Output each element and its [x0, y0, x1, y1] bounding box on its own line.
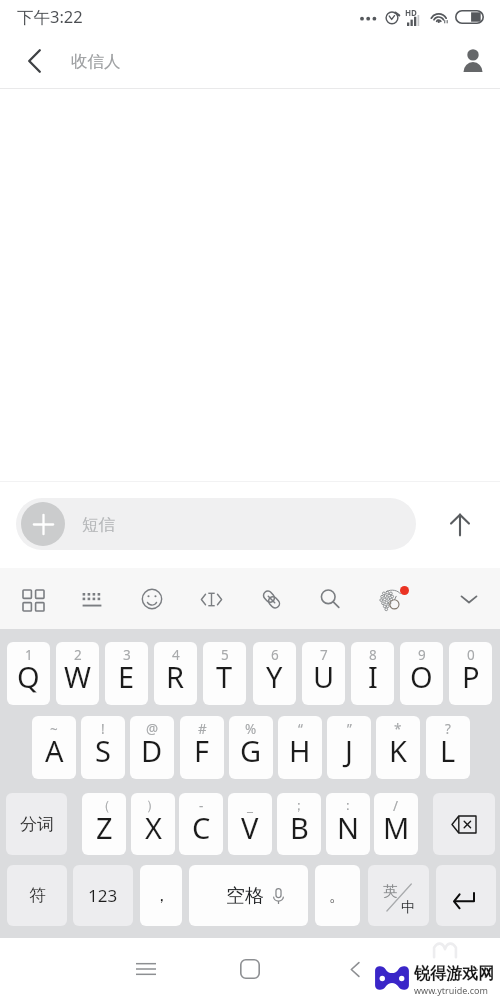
button[interactable]: 。 [315, 865, 360, 926]
staticText: HD [405, 7, 417, 18]
staticText: 短信 [82, 514, 115, 535]
staticText: ： [341, 797, 355, 814]
staticText: ； [292, 797, 306, 814]
button[interactable]: “ [278, 716, 322, 779]
button[interactable]: * [376, 716, 420, 779]
button[interactable]: ” [327, 716, 371, 779]
staticText: C [192, 808, 211, 847]
button[interactable]: ， [140, 865, 182, 926]
staticText: / [393, 797, 399, 815]
staticText: 2 [74, 646, 82, 664]
staticText: 3 [123, 646, 131, 664]
staticText: E [118, 657, 135, 696]
button[interactable]: ） [131, 793, 175, 855]
staticText: A [45, 731, 64, 770]
staticText: _ [247, 797, 253, 815]
button[interactable]: ! [81, 716, 125, 779]
staticText: Z [96, 808, 113, 847]
button[interactable]: Add attachment [21, 502, 65, 546]
button[interactable]: 2 [56, 642, 99, 705]
button[interactable]: 8 [351, 642, 394, 705]
staticText: ~ [50, 720, 58, 738]
staticText: B [290, 808, 309, 847]
staticText: 英 [383, 882, 398, 900]
button[interactable]: 4 [154, 642, 197, 705]
button[interactable]: 分词 [6, 793, 67, 855]
button[interactable]: - [179, 793, 223, 855]
staticText: 。 [329, 885, 346, 906]
button[interactable]: Emoji [127, 568, 177, 630]
staticText: 123 [88, 884, 118, 907]
button[interactable]: 0 [449, 642, 492, 705]
staticText: 6 [271, 646, 279, 664]
button[interactable]: 空格 [189, 865, 308, 926]
staticText: V [241, 808, 259, 847]
button[interactable]: ~ [32, 716, 76, 779]
staticText: 中 [401, 898, 416, 916]
staticText: F [194, 731, 210, 770]
button[interactable]: 1 [7, 642, 50, 705]
button[interactable]: ： [326, 793, 370, 855]
button[interactable]: 9 [400, 642, 443, 705]
button[interactable]: Text editing [186, 568, 236, 630]
staticText: 锐得游戏网 [414, 964, 494, 984]
button[interactable]: Search [305, 568, 355, 630]
button[interactable]: Add attachment [16, 498, 416, 550]
staticText: ! [101, 720, 105, 738]
staticText: 分词 [20, 814, 54, 835]
button[interactable]: Stickers [369, 568, 419, 630]
button[interactable]: Keyboard [67, 568, 117, 630]
staticText: 7 [320, 646, 328, 664]
button[interactable]: Home [223, 938, 277, 1000]
button[interactable]: Hide keyboard [444, 568, 494, 630]
button[interactable]: Back [328, 938, 382, 1000]
button[interactable]: Back [0, 33, 70, 89]
button[interactable]: ? [426, 716, 470, 779]
staticText: U [313, 657, 335, 696]
staticText: G [240, 731, 262, 770]
staticText: 符 [29, 885, 46, 906]
button[interactable]: ； [277, 793, 321, 855]
button[interactable]: lang [368, 865, 429, 926]
button[interactable]: / [374, 793, 418, 855]
staticText: “ [298, 720, 303, 738]
button[interactable]: 符 [7, 865, 67, 926]
button[interactable]: Choose contact [444, 33, 500, 89]
button[interactable]: 7 [302, 642, 345, 705]
staticText: 9 [418, 646, 426, 664]
staticText: M [383, 808, 410, 847]
staticText: S [95, 731, 111, 770]
button[interactable]: # [180, 716, 224, 779]
staticText: ） [146, 797, 160, 814]
button[interactable]: 6 [253, 642, 296, 705]
button[interactable]: % [229, 716, 273, 779]
button[interactable]: Apps [7, 568, 57, 630]
staticText: K [389, 731, 407, 770]
staticText: 收信人 [71, 51, 121, 72]
button[interactable]: Clipboard [246, 568, 296, 630]
button[interactable]: Recent apps [119, 938, 173, 1000]
button[interactable]: Send [425, 482, 495, 568]
staticText: ” [347, 720, 352, 738]
staticText: @ [146, 720, 159, 738]
staticText: Y [266, 657, 283, 696]
staticText: L [440, 731, 456, 770]
staticText: # [198, 720, 207, 738]
staticText: W [64, 657, 91, 696]
staticText: 下午3:22 [17, 5, 83, 28]
button[interactable]: @ [130, 716, 174, 779]
staticText: ? [445, 720, 451, 738]
button[interactable]: 123 [73, 865, 133, 926]
button[interactable]: _ [228, 793, 272, 855]
staticText: D [141, 731, 163, 770]
staticText: % [245, 720, 257, 738]
button[interactable]: 5 [203, 642, 246, 705]
staticText: O [410, 657, 433, 696]
button[interactable]: back [433, 793, 495, 855]
button[interactable]: （ [82, 793, 126, 855]
staticText: I [368, 657, 378, 696]
button[interactable]: enter [436, 865, 496, 926]
staticText: 5 [221, 646, 229, 664]
staticText: www.ytruide.com [414, 984, 488, 996]
button[interactable]: 3 [105, 642, 148, 705]
